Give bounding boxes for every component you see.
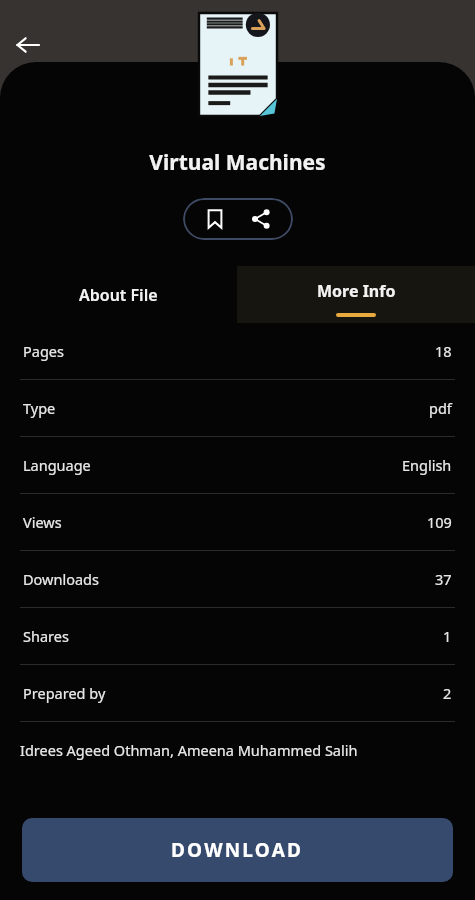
staticText: 109 bbox=[427, 512, 452, 532]
staticText: 37 bbox=[435, 569, 452, 589]
staticText: Views bbox=[23, 512, 62, 532]
staticText: 1 bbox=[443, 626, 452, 646]
staticText: Virtual Machines bbox=[0, 148, 475, 177]
button[interactable]: Back bbox=[6, 23, 50, 67]
button[interactable]: Shares bbox=[0, 608, 475, 664]
staticText: Type bbox=[23, 398, 56, 418]
staticText: Idrees Ageed Othman, Ameena Muhammed Sal… bbox=[20, 740, 358, 760]
button[interactable]: Pages bbox=[0, 323, 475, 379]
staticText: Language bbox=[23, 455, 91, 475]
staticText: 2 bbox=[443, 683, 452, 703]
staticText: Shares bbox=[23, 626, 69, 646]
button[interactable]: Views bbox=[0, 494, 475, 550]
button[interactable]: Prepared by bbox=[0, 665, 475, 721]
button[interactable]: Language bbox=[0, 437, 475, 493]
button[interactable]: Type bbox=[0, 380, 475, 436]
staticText: 18 bbox=[435, 341, 452, 361]
button[interactable]: DOWNLOAD bbox=[22, 818, 453, 882]
button[interactable]: About File bbox=[0, 266, 237, 323]
staticText: DOWNLOAD bbox=[171, 837, 304, 863]
staticText: Prepared by bbox=[23, 683, 106, 703]
button[interactable]: Bookmark bbox=[192, 198, 238, 240]
button[interactable]: Share bbox=[238, 198, 284, 240]
staticText: Pages bbox=[23, 341, 64, 361]
staticText: Downloads bbox=[23, 569, 99, 589]
staticText: pdf bbox=[429, 398, 452, 418]
staticText: More Info bbox=[317, 280, 396, 302]
button[interactable]: More Info bbox=[237, 266, 475, 323]
staticText: About File bbox=[79, 284, 158, 306]
staticText: English bbox=[402, 455, 452, 475]
button[interactable]: Downloads bbox=[0, 551, 475, 607]
